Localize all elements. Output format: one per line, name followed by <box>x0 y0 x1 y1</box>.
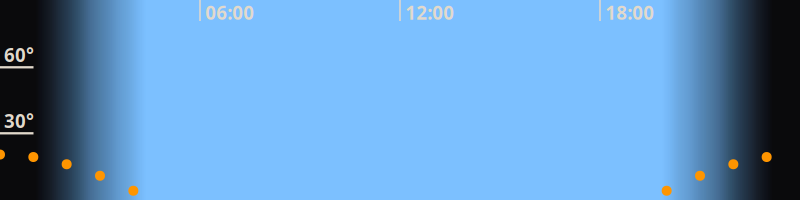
staticText: 06:00 <box>205 0 254 25</box>
staticText: 12:00 <box>405 0 454 25</box>
staticText: 30° <box>4 108 34 133</box>
staticText: 60° <box>4 42 34 67</box>
staticText: 18:00 <box>605 0 654 25</box>
